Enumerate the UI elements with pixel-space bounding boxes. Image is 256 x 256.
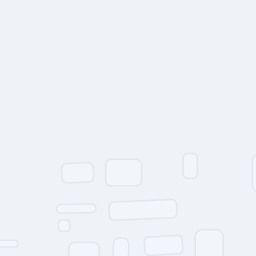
button[interactable]: Tile 12 bbox=[195, 230, 223, 256]
button[interactable]: Tile 5 bbox=[57, 204, 96, 213]
button[interactable]: Tile 3 bbox=[183, 153, 197, 178]
button[interactable]: Tile 4 bbox=[252, 154, 256, 191]
button[interactable]: Tile 6 bbox=[58, 220, 70, 231]
button[interactable]: Tile 2 bbox=[106, 159, 142, 186]
button[interactable]: Tile 7 bbox=[109, 201, 177, 219]
button[interactable]: Tile 11 bbox=[145, 236, 182, 255]
button[interactable]: Tile 1 bbox=[62, 163, 93, 182]
button[interactable]: Tile 8 bbox=[0, 240, 18, 247]
button[interactable]: Tile 9 bbox=[69, 242, 99, 256]
button[interactable]: Tile 10 bbox=[113, 238, 129, 256]
